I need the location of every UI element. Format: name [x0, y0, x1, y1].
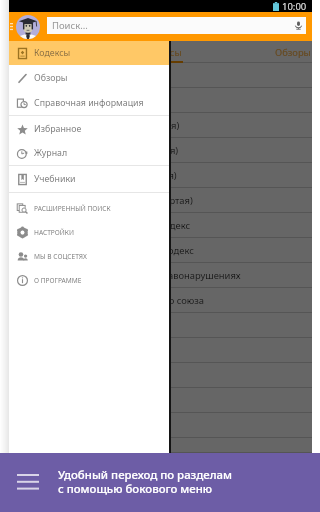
staticText: 10:00 — [282, 0, 307, 12]
staticText: Учебники — [34, 173, 76, 185]
button[interactable]: О ПРОГРАММЕ — [9, 268, 171, 292]
staticText: с помощью бокового меню — [58, 481, 213, 497]
staticText: Обзоры — [275, 46, 311, 59]
staticText: Федеральные законы — [18, 94, 117, 107]
staticText: Гражданский кодекс (часть первая) — [18, 119, 180, 132]
button[interactable]: Open navigation menu — [17, 474, 39, 490]
staticText: О ПРОГРАММЕ — [34, 276, 82, 285]
button[interactable]: Гражданский кодекс (часть третья) — [9, 163, 312, 188]
button[interactable]: Кодекс об административных правонарушени… — [9, 263, 312, 288]
button[interactable]: Налоговый кодекс (часть вторая) — [9, 363, 312, 388]
staticText: Гражданский процессуальный кодекс — [18, 219, 191, 232]
button[interactable]: Гражданский кодекс (часть первая) — [9, 113, 312, 138]
button[interactable]: Арбитражный процессуальный кодекс — [9, 238, 312, 263]
button[interactable]: Кодексы — [9, 41, 171, 65]
button[interactable]: Profile — [16, 15, 40, 39]
button[interactable]: Семейный кодекс — [9, 413, 312, 438]
staticText: Конституция РФ — [18, 69, 92, 82]
staticText: Гражданский кодекс (часть третья) — [18, 169, 177, 182]
button[interactable]: Поиск... — [47, 17, 306, 34]
staticText: Поиск... — [52, 19, 88, 32]
button[interactable]: Жилищный кодекс — [9, 388, 312, 413]
staticText: Кодексы — [34, 47, 71, 59]
button[interactable]: Избранное — [9, 116, 171, 141]
staticText: Гражданский кодекс (часть вторая) — [18, 144, 179, 157]
button[interactable]: Федеральные законы — [9, 88, 312, 113]
button[interactable]: Земельный кодекс — [9, 438, 312, 453]
button[interactable]: Гражданский процессуальный кодекс — [9, 213, 312, 238]
staticText: Таможенный кодекс Таможенного союза — [18, 294, 205, 307]
button[interactable]: Таможенный кодекс Таможенного союза — [9, 288, 312, 313]
staticText: Налоговый кодекс (часть первая) — [18, 344, 171, 357]
button[interactable]: Voice search — [293, 20, 304, 31]
staticText: Справочная информация — [34, 97, 144, 109]
button[interactable]: Налоговый кодекс (часть первая) — [9, 338, 312, 363]
button[interactable]: Журнал — [9, 141, 171, 165]
button[interactable]: НАСТРОЙКИ — [9, 220, 171, 244]
staticText: Кодекс об административных правонарушени… — [18, 269, 241, 282]
staticText: НАСТРОЙКИ — [34, 228, 74, 237]
staticText: РАСШИРЕННЫЙ ПОИСК — [34, 204, 111, 213]
staticText: Обзоры — [34, 72, 68, 84]
button[interactable]: Учебники — [9, 166, 171, 192]
staticText: Гражданский кодекс (часть четвертая) — [18, 194, 193, 207]
staticText: Кодексы — [143, 46, 182, 59]
staticText: Удобный переход по разделам — [58, 467, 232, 483]
button[interactable]: Обзоры — [275, 41, 311, 63]
staticText: МЫ В СОЦСЕТЯХ — [34, 252, 87, 261]
button[interactable]: МЫ В СОЦСЕТЯХ — [9, 244, 171, 268]
button[interactable]: Кодексы — [143, 41, 182, 63]
staticText: Журнал — [34, 147, 68, 159]
button[interactable]: РАСШИРЕННЫЙ ПОИСК — [9, 196, 171, 220]
staticText: Арбитражный процессуальный кодекс — [18, 244, 194, 257]
button[interactable]: Трудовой кодекс — [9, 313, 312, 338]
button[interactable]: Гражданский кодекс (часть вторая) — [9, 138, 312, 163]
button[interactable]: Справочная информация — [9, 90, 171, 115]
button[interactable]: Конституция РФ — [9, 63, 312, 88]
button[interactable]: Обзоры — [9, 65, 171, 90]
button[interactable]: Гражданский кодекс (часть четвертая) — [9, 188, 312, 213]
staticText: Избранное — [34, 123, 82, 135]
